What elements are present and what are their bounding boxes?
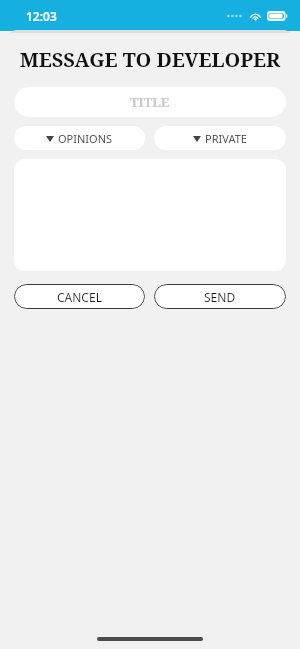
staticText: OPINIONS	[58, 131, 113, 146]
staticText: 12:03	[26, 8, 57, 24]
staticText: CANCEL	[57, 289, 102, 305]
staticText: PRIVATE	[205, 131, 247, 146]
button[interactable]: CANCEL	[14, 284, 145, 309]
button[interactable]: SEND	[154, 284, 286, 309]
button[interactable]: OPINIONS	[14, 126, 145, 150]
button[interactable]: PRIVATE	[154, 126, 286, 150]
staticText: MESSAGE TO DEVELOPER	[0, 46, 300, 73]
button[interactable]: TITLE	[14, 87, 286, 117]
staticText: SEND	[204, 289, 236, 305]
staticText: TITLE	[130, 93, 170, 111]
